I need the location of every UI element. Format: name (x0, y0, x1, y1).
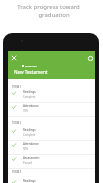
staticText: New Testament (14, 69, 48, 75)
staticText: graduation (38, 11, 70, 19)
staticText: Complete (23, 95, 36, 99)
staticText: Readings (23, 128, 36, 132)
staticText: Assessment (23, 156, 40, 160)
button[interactable]: Readings (8, 178, 95, 183)
staticText: 50% (23, 147, 29, 151)
staticText: TERM 1 (12, 85, 22, 89)
staticText: Attendance (23, 142, 39, 146)
staticText: SEMESTER (25, 64, 37, 67)
button[interactable]: Readings (8, 127, 95, 140)
staticText: Complete (23, 133, 36, 137)
button[interactable]: Attendance (8, 141, 95, 154)
staticText: TERM 2 (12, 121, 22, 125)
staticText: Readings (23, 90, 36, 94)
staticText: 70% (23, 109, 29, 113)
staticText: TERM 3 (12, 170, 22, 174)
button[interactable]: Readings (8, 89, 95, 102)
button[interactable]: Share (86, 54, 94, 62)
staticText: Readings (23, 179, 36, 183)
staticText: Track progress toward (17, 3, 80, 11)
staticText: Attendance (23, 104, 39, 108)
staticText: Passed (23, 161, 32, 165)
button[interactable]: Close (10, 54, 18, 62)
button[interactable]: Attendance (8, 103, 95, 116)
button[interactable]: Assessment (8, 155, 95, 168)
